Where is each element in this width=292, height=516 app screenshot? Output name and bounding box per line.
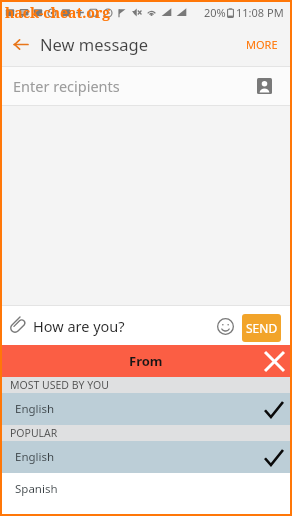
button[interactable]: English (2, 441, 290, 473)
button[interactable]: Back (2, 22, 40, 66)
button[interactable]: MORE (234, 25, 290, 64)
staticText: MOST USED BY YOU (10, 378, 109, 392)
button[interactable]: SEND (242, 314, 281, 342)
staticText: Spanish (15, 481, 58, 497)
staticText: SEND (246, 320, 278, 336)
staticText: 11:08 PM (236, 5, 284, 20)
button[interactable]: Close (258, 345, 290, 377)
button[interactable]: Add recipient (247, 67, 282, 105)
staticText: 20% (204, 5, 226, 20)
button[interactable]: English (2, 393, 290, 425)
button[interactable]: Insert emoji (214, 307, 237, 346)
staticText: hack-cheat.org (5, 3, 111, 22)
staticText: POPULAR (10, 426, 58, 440)
staticText: How are you? (33, 316, 125, 336)
button[interactable]: Attach file (2, 306, 33, 345)
button[interactable]: Spanish (2, 473, 290, 505)
staticText: English (15, 401, 55, 417)
staticText: English (15, 449, 55, 465)
staticText: MORE (246, 37, 278, 52)
staticText: From (129, 352, 163, 370)
staticText: Enter recipients (13, 76, 120, 96)
staticText: New message (40, 33, 149, 55)
